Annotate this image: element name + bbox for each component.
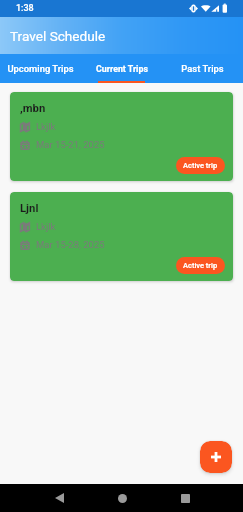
button[interactable]: Add trip [200, 441, 232, 473]
staticText: Upcoming Trips [7, 63, 74, 74]
staticText: ,mbn [20, 102, 46, 115]
staticText: Lkjlk [36, 121, 56, 132]
staticText: Mar 15-28, 2025 [36, 239, 105, 250]
button[interactable]: ,mbn [10, 92, 233, 181]
button[interactable]: Back [46, 485, 72, 511]
staticText: Past Trips [181, 63, 224, 74]
button[interactable]: Ljnl [10, 192, 233, 281]
button[interactable]: Current Trips [81, 54, 162, 83]
button[interactable]: Past Trips [162, 54, 243, 83]
staticText: Travel Schedule [10, 28, 106, 44]
staticText: Mar 15-21, 2025 [36, 139, 105, 150]
staticText: Lkjlk [36, 221, 56, 232]
staticText: Active trip [183, 261, 218, 270]
button[interactable]: Upcoming Trips [0, 54, 81, 83]
button[interactable]: Recent apps [172, 485, 198, 511]
staticText: Active trip [183, 161, 218, 170]
staticText: 1:38 [16, 3, 34, 14]
staticText: Current Trips [96, 64, 148, 74]
staticText: Ljnl [20, 202, 39, 215]
button[interactable]: Active trip [176, 157, 225, 174]
button[interactable]: Home [109, 485, 135, 511]
button[interactable]: Active trip [176, 257, 225, 274]
